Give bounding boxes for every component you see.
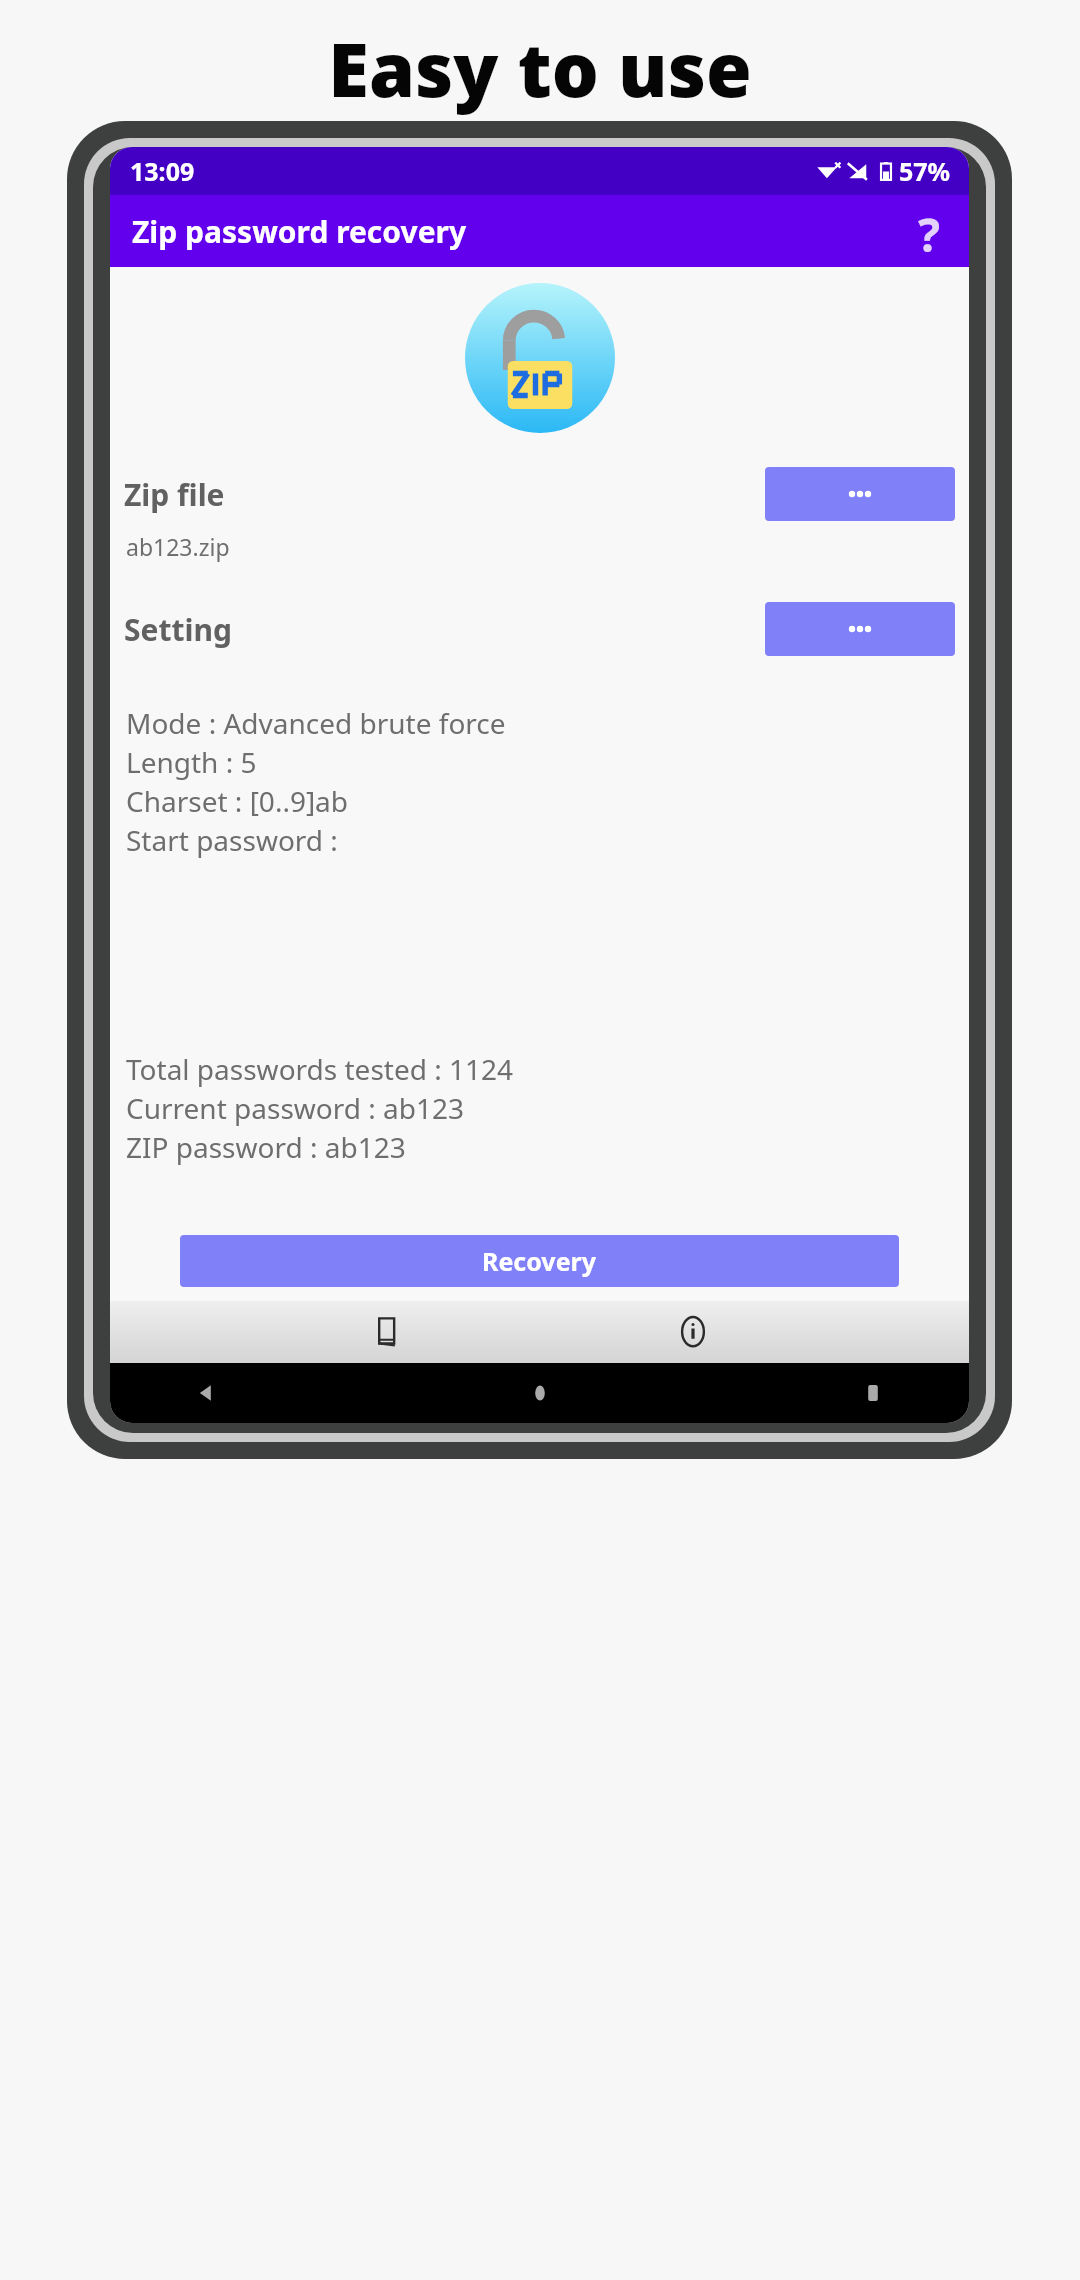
- staticText: 13:09: [130, 154, 195, 188]
- staticText: Zip password recovery: [132, 211, 467, 252]
- button[interactable]: Browse: [765, 602, 955, 656]
- staticText: Length : 5: [126, 743, 257, 781]
- staticText: ZIP password : ab123: [126, 1128, 406, 1166]
- button[interactable]: Recent apps: [847, 1367, 899, 1419]
- staticText: Easy to use: [328, 18, 752, 119]
- staticText: Recovery: [482, 1244, 597, 1278]
- staticText: Zip file: [124, 474, 765, 515]
- button[interactable]: Browse: [765, 467, 955, 521]
- staticText: Setting: [124, 609, 765, 650]
- staticText: 57%: [899, 154, 951, 188]
- staticText: Mode : Advanced brute force: [126, 704, 506, 742]
- staticText: Start password :: [126, 821, 338, 859]
- staticText: Current password : ab123: [126, 1089, 465, 1127]
- button[interactable]: Home: [514, 1367, 566, 1419]
- button[interactable]: Manual: [354, 1301, 418, 1363]
- staticText: Charset : [0..9]ab: [126, 782, 349, 820]
- button[interactable]: Help: [901, 203, 957, 259]
- button[interactable]: Recovery: [180, 1235, 899, 1287]
- button[interactable]: Back: [180, 1367, 232, 1419]
- staticText: ?: [918, 203, 940, 259]
- staticText: ab123.zip: [126, 531, 230, 562]
- staticText: Total passwords tested : 1124: [126, 1050, 514, 1088]
- button[interactable]: Info: [661, 1301, 725, 1363]
